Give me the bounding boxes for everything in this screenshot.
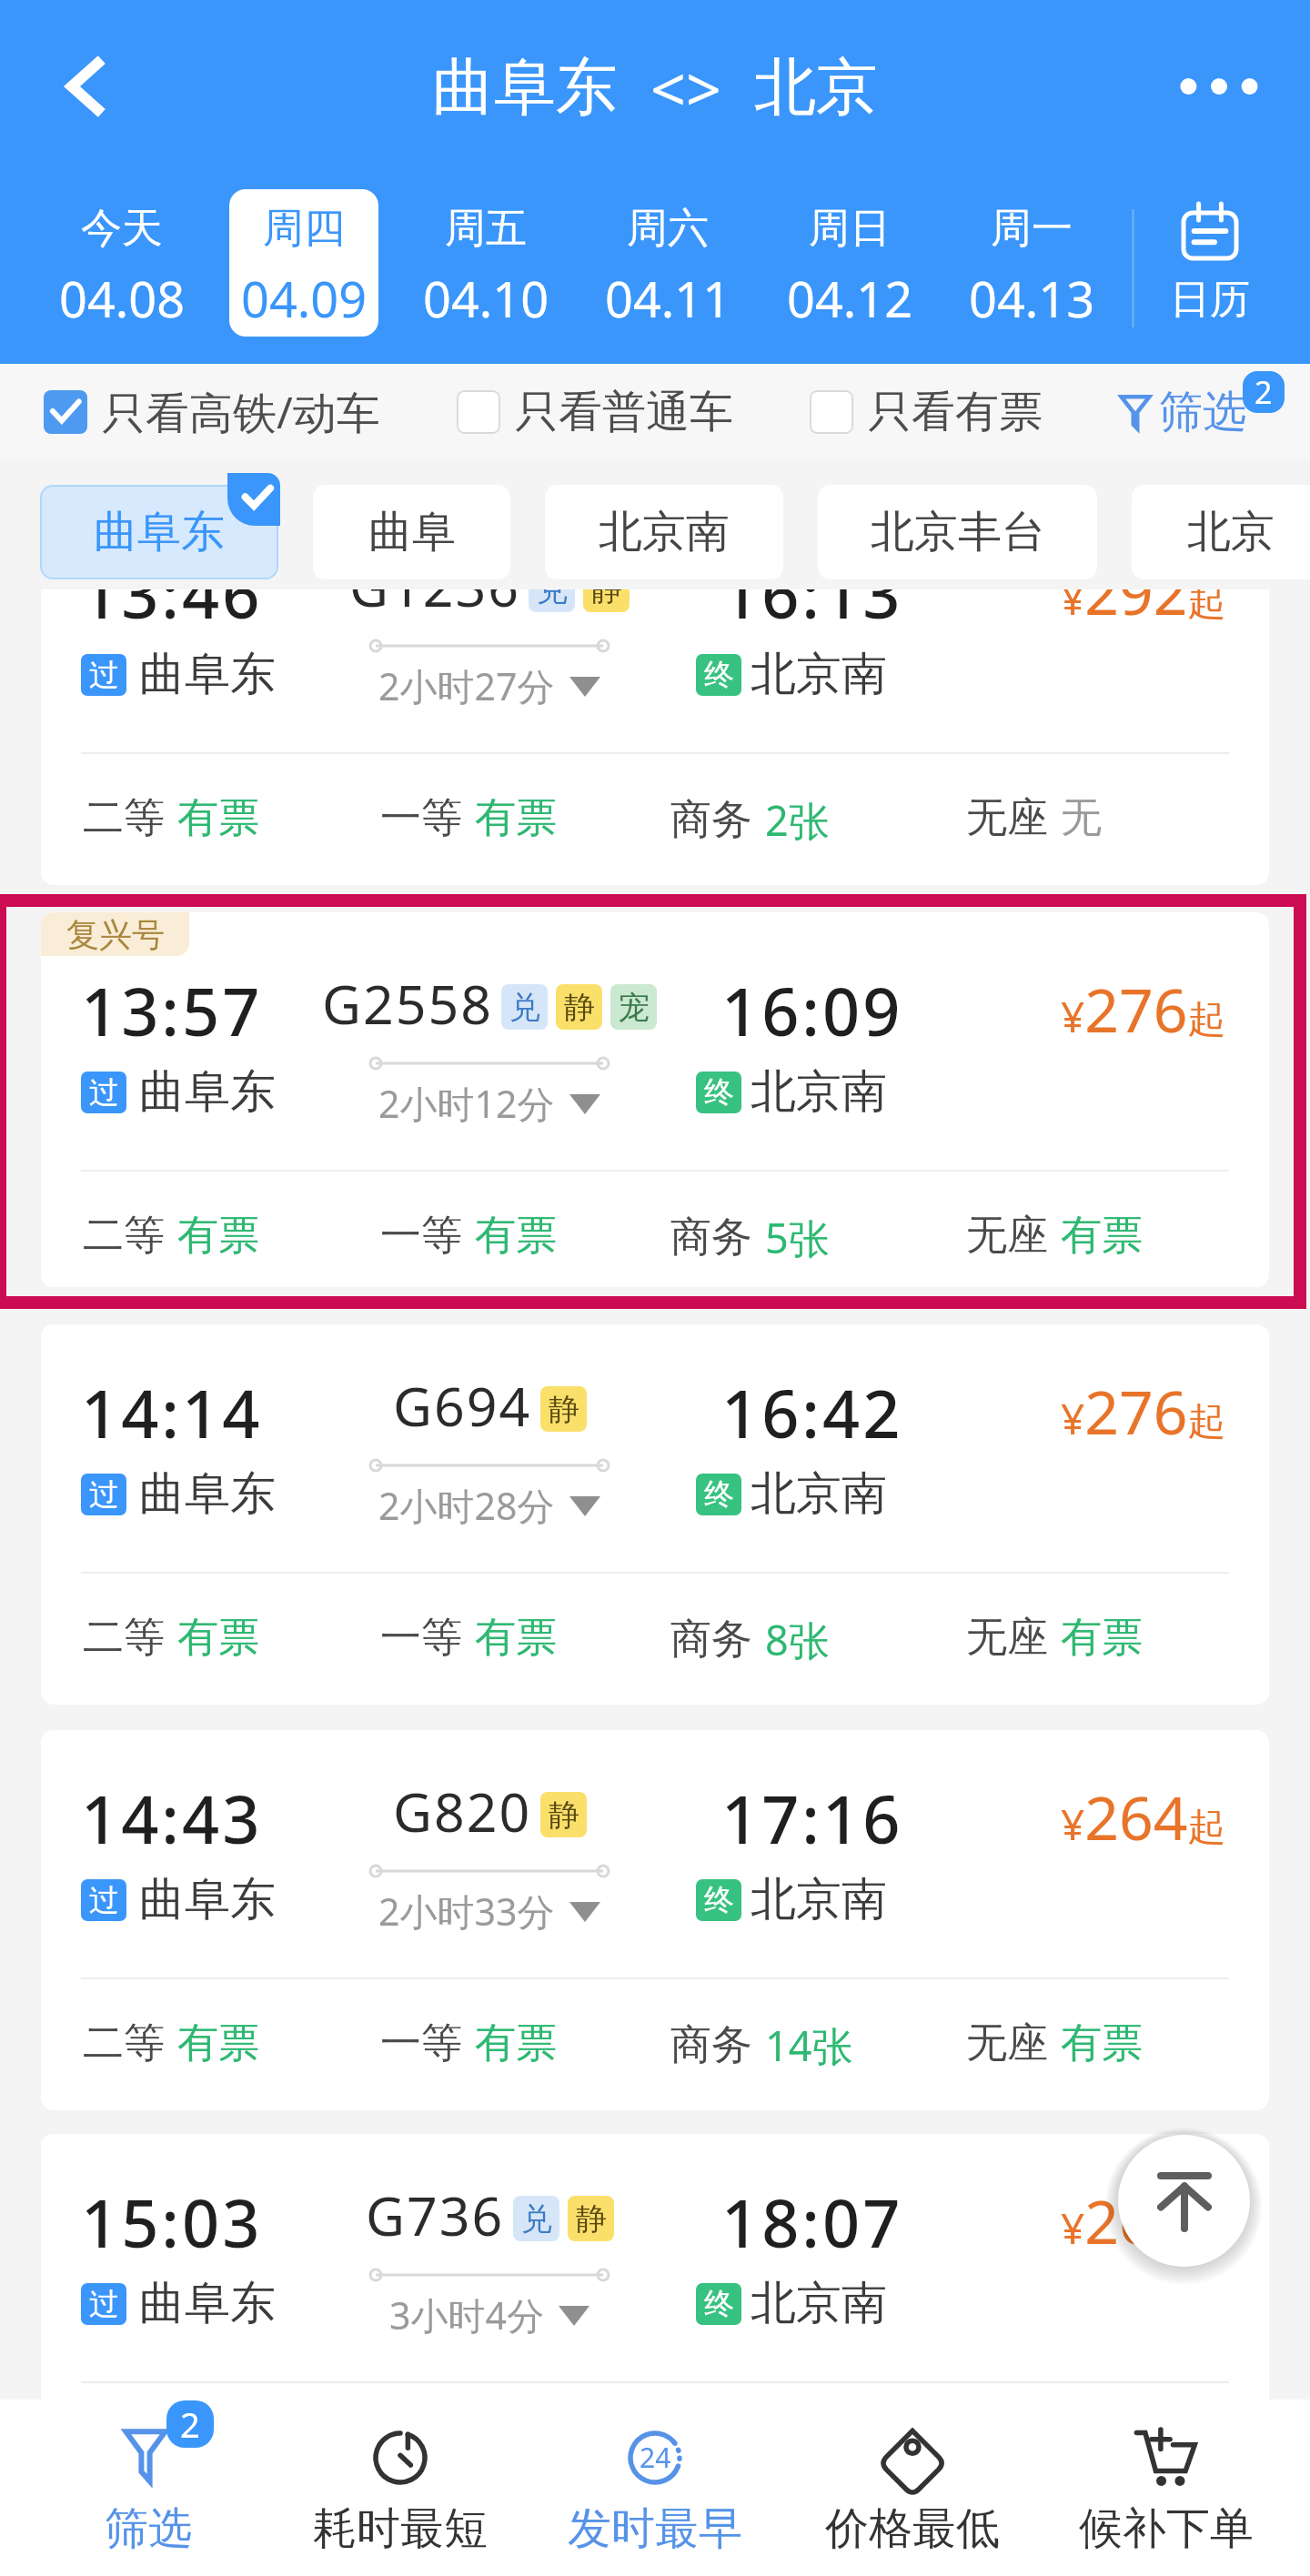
staticText: 过 [89, 2285, 119, 2323]
staticText: 过 [89, 1881, 119, 1919]
staticText: 有票 [177, 1612, 259, 1664]
staticText: ¥276起 [1061, 968, 1226, 1050]
button[interactable]: 今天 [47, 189, 196, 337]
staticText: 一等 [380, 2018, 462, 2069]
staticText: 兑 [537, 570, 568, 609]
staticText: 北京南 [751, 1063, 887, 1121]
staticText: 有票 [475, 1612, 557, 1664]
button[interactable]: 周五 [411, 189, 560, 337]
button[interactable]: 北京 [1132, 485, 1310, 579]
staticText: 2小时12分 [378, 1078, 555, 1129]
staticText: 无座 [966, 2018, 1048, 2069]
staticText: 曲阜东 [139, 1465, 276, 1523]
staticText: 北京南 [599, 505, 730, 559]
staticText: ¥276起 [1061, 1370, 1226, 1452]
button[interactable]: 2 [17, 2400, 279, 2576]
staticText: 耗时最短 [313, 2501, 488, 2556]
staticText: 候补下单 [1079, 2501, 1254, 2556]
button[interactable]: 14:14 [41, 1324, 1269, 1705]
staticText: 静 [576, 2199, 607, 2239]
staticText: 一等 [380, 1612, 462, 1664]
staticText: 价格最低 [825, 2501, 1000, 2556]
staticText: 04.12 [787, 265, 913, 332]
staticText: 周五 [445, 203, 527, 255]
button[interactable]: 周日 [775, 189, 924, 337]
staticText: 16:09 [721, 966, 903, 1055]
staticText: 15:03 [81, 2178, 263, 2267]
button[interactable]: 曲阜 [313, 485, 510, 579]
button[interactable]: 候补下单 [1035, 2400, 1297, 2576]
staticText: 13:57 [81, 966, 263, 1055]
staticText: 有票 [1061, 1210, 1143, 1262]
staticText: 终 [704, 1881, 734, 1919]
staticText: 14张 [765, 2018, 853, 2073]
staticText: ¥264起 [1061, 1776, 1226, 1857]
staticText: 日历 [1170, 275, 1250, 325]
button[interactable]: 周四 [229, 189, 378, 337]
button[interactable]: 13:46 [41, 505, 1269, 885]
staticText: 2小时28分 [378, 1480, 555, 1531]
staticText: 只看有票 [868, 385, 1043, 439]
staticText: 有票 [177, 792, 259, 844]
button[interactable]: 只看高铁/动车 [44, 382, 380, 442]
button[interactable]: 周一 [957, 189, 1106, 337]
button[interactable]: Scroll to top [1118, 2135, 1250, 2267]
staticText: 二等 [83, 2421, 165, 2473]
staticText: 周六 [627, 203, 709, 255]
button[interactable]: 耗时最短 [269, 2400, 531, 2576]
staticText: 北京丰台 [871, 505, 1045, 559]
staticText: 04.09 [241, 265, 368, 332]
staticText: 北京 [754, 49, 878, 127]
staticText: 曲阜东 [139, 1063, 276, 1121]
staticText: 13:46 [81, 548, 263, 638]
button[interactable]: 曲阜东 [40, 485, 278, 579]
button[interactable]: 24 [524, 2400, 786, 2576]
button[interactable]: 北京丰台 [818, 485, 1097, 579]
staticText: 有票 [1061, 2421, 1143, 2473]
staticText: 无 [1061, 792, 1102, 844]
staticText: 无座 [966, 792, 1048, 844]
staticText: 静 [549, 1390, 579, 1429]
staticText: 2小时33分 [378, 1886, 555, 1937]
staticText: 静 [564, 988, 595, 1027]
staticText: 商务 [670, 2019, 752, 2071]
staticText: 18:07 [721, 2178, 903, 2267]
button[interactable]: Back [36, 36, 136, 136]
staticText: 商务 [670, 2423, 752, 2475]
button[interactable]: 周六 [593, 189, 742, 337]
staticText: 静 [549, 1796, 579, 1835]
button[interactable]: 价格最低 [781, 2400, 1043, 2576]
staticText: 过 [89, 656, 119, 694]
staticText: 周日 [809, 203, 891, 255]
staticText: 今天 [81, 203, 163, 255]
staticText: 曲阜东 [94, 505, 225, 559]
button[interactable]: 15:03 [41, 2134, 1269, 2514]
staticText: 3小时4分 [389, 2289, 544, 2340]
staticText: 17:16 [721, 1774, 903, 1863]
staticText: 二等 [83, 792, 165, 844]
staticText: 有票 [475, 792, 557, 844]
staticText: 复兴号 [66, 914, 165, 955]
button[interactable]: 只看有票 [810, 385, 1043, 439]
button[interactable]: 北京南 [545, 485, 783, 579]
button[interactable]: 筛选 [1115, 364, 1294, 459]
staticText: 周一 [991, 203, 1073, 255]
button[interactable]: 14:43 [41, 1730, 1269, 2110]
button[interactable]: 日历 [1170, 202, 1250, 325]
button[interactable]: More options [1169, 36, 1269, 136]
button[interactable]: 只看普通车 [457, 385, 733, 439]
staticText: 只看高铁/动车 [102, 382, 380, 442]
staticText: G736 [366, 2179, 505, 2251]
button[interactable]: 复兴号 [41, 912, 1269, 1287]
staticText: 16:42 [721, 1368, 903, 1457]
staticText: 有票 [1061, 2018, 1143, 2069]
staticText: 曲阜东 [432, 49, 618, 127]
staticText: 商务 [670, 1212, 752, 1263]
staticText: 筛选 [1159, 385, 1246, 439]
staticText: 二等 [83, 1210, 165, 1262]
staticText: 曲阜 [368, 505, 456, 559]
staticText: 北京南 [751, 2275, 887, 2332]
staticText: 商务 [670, 794, 752, 846]
